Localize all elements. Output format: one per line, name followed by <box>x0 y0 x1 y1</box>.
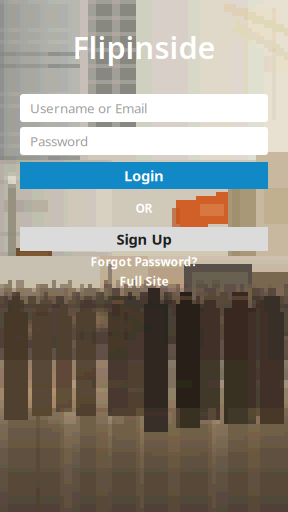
button[interactable]: Forgot Password? <box>20 251 268 272</box>
button[interactable]: Username or Email <box>20 94 268 122</box>
button[interactable]: Full Site <box>20 272 268 290</box>
staticText: Login <box>124 166 164 185</box>
staticText: Full Site <box>119 273 168 289</box>
button[interactable]: Login <box>20 162 268 189</box>
staticText: Username or Email <box>30 99 147 117</box>
staticText: Password <box>30 132 88 150</box>
staticText: OR <box>135 200 152 216</box>
button[interactable]: Password <box>20 127 268 155</box>
staticText: Forgot Password? <box>90 253 197 269</box>
staticText: Sign Up <box>116 229 171 249</box>
staticText: Flipinside <box>72 27 215 67</box>
button[interactable]: Sign Up <box>20 227 268 251</box>
